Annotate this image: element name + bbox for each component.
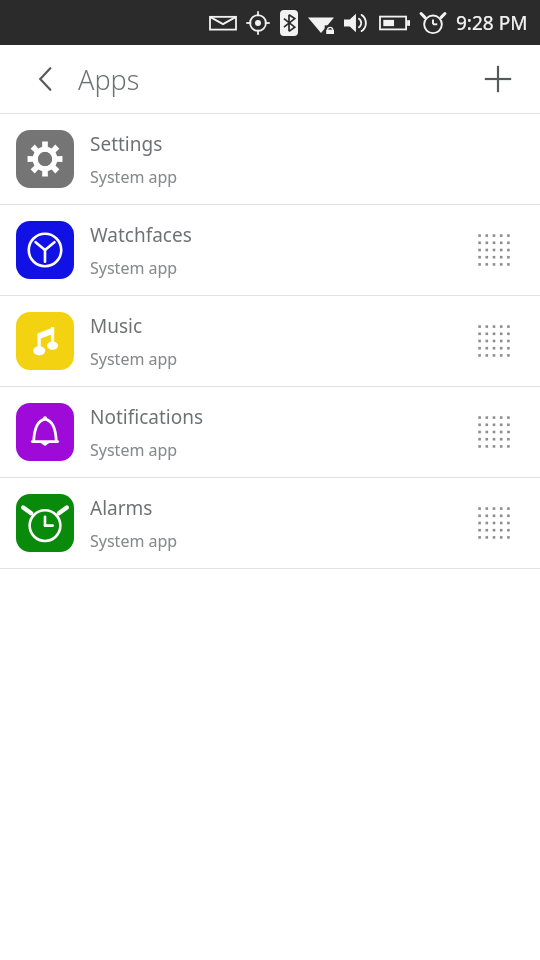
button[interactable]: Reorder [476,323,512,359]
staticText: System app [90,166,178,188]
staticText: System app [90,530,178,552]
button[interactable]: Reorder [476,232,512,268]
button[interactable]: Settings [0,114,540,204]
button[interactable]: Back [28,61,64,97]
staticText: System app [90,257,178,279]
staticText: System app [90,439,178,461]
staticText: Apps [78,61,140,98]
button[interactable]: Watchfaces [0,205,540,295]
button[interactable]: Add [478,59,518,99]
staticText: Watchfaces [90,222,192,248]
button[interactable]: Reorder [476,414,512,450]
button[interactable]: Alarms [0,478,540,568]
button[interactable]: Notifications [0,387,540,477]
staticText: Notifications [90,404,204,430]
staticText: Settings [90,131,163,157]
staticText: Music [90,313,143,339]
staticText: System app [90,348,178,370]
staticText: Alarms [90,495,153,521]
button[interactable]: Music [0,296,540,386]
staticText: 9:28 PM [456,10,528,36]
button[interactable]: Reorder [476,505,512,541]
